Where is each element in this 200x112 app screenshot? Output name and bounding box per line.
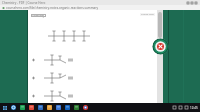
button[interactable]: Course Hero [141,13,154,16]
button[interactable]: Notes [46,104,53,111]
button[interactable]: Minimize [186,1,190,5]
button[interactable]: Site information [2,6,5,9]
staticText: Chemistry - PDF | Course Hero [2,1,186,5]
button[interactable]: Chemistry [28,10,157,103]
staticText: 12:45 [190,106,198,110]
button[interactable]: File Explorer [19,104,26,111]
button[interactable]: Browser [37,104,44,111]
button[interactable]: Scroll bar [157,10,163,103]
button[interactable]: Stop recording [152,38,169,55]
button[interactable]: Chrome [82,104,89,111]
button[interactable]: Store [55,104,62,111]
button[interactable]: Excel [73,104,80,111]
button[interactable]: Start [1,104,8,111]
button[interactable]: Battery [184,105,189,110]
button[interactable]: Search [10,104,17,111]
staticText: Chemistry [32,14,45,17]
staticText: Course Hero [141,13,154,16]
button[interactable]: coursehero.com/file/chemistry-notes-orga… [6,6,200,10]
button[interactable]: Word [64,104,71,111]
button[interactable]: Close [194,1,198,5]
button[interactable]: Network [172,105,177,110]
button[interactable]: Volume [178,105,183,110]
button[interactable]: Maximize [190,1,194,5]
button[interactable]: Mail [28,104,35,111]
